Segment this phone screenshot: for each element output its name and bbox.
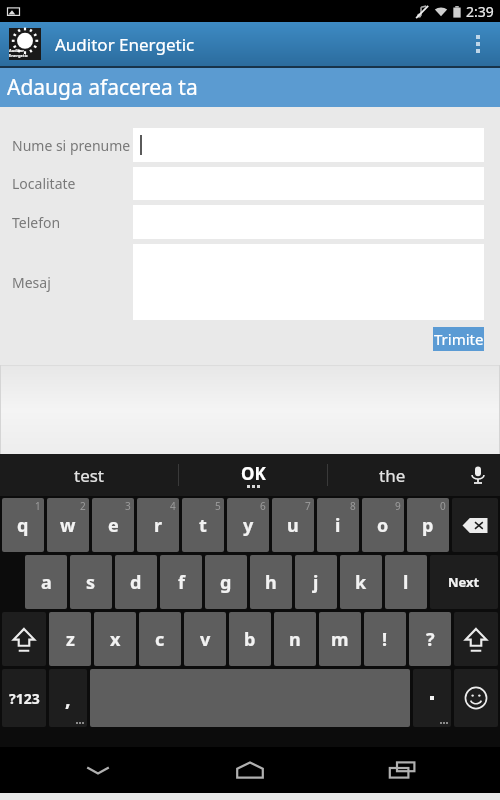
staticText: , xyxy=(65,685,71,712)
staticText: g xyxy=(220,570,232,595)
staticText: 8 xyxy=(350,499,356,513)
button[interactable]: Backspace xyxy=(452,498,498,552)
staticText: test xyxy=(74,464,105,487)
staticText: v xyxy=(200,627,211,652)
button[interactable]: c xyxy=(139,612,181,666)
button[interactable]: x xyxy=(94,612,136,666)
staticText: s xyxy=(86,570,96,595)
staticText: Trimite xyxy=(434,329,484,349)
button[interactable]: v xyxy=(184,612,226,666)
staticText: Auditor Energetic xyxy=(55,33,195,56)
button[interactable]: g xyxy=(205,555,247,609)
staticText: w xyxy=(60,513,76,538)
staticText: 2 xyxy=(80,499,86,513)
staticText: OK xyxy=(241,462,266,485)
staticText: r xyxy=(154,513,163,538)
button[interactable]: ?123 xyxy=(2,669,46,727)
staticText: Nume si prenume xyxy=(12,136,131,155)
button[interactable]: Comma xyxy=(49,669,87,727)
staticText: n xyxy=(289,627,301,652)
button[interactable]: ! xyxy=(364,612,406,666)
staticText: t xyxy=(199,513,207,538)
staticText: m xyxy=(331,627,349,652)
staticText: Mesaj xyxy=(12,273,51,292)
staticText: z xyxy=(66,627,75,652)
button[interactable]: Next xyxy=(430,555,498,609)
staticText: Telefon xyxy=(12,213,61,232)
staticText: Adauga afacerea ta xyxy=(7,73,198,102)
button[interactable]: Shift xyxy=(2,612,46,666)
staticText: 7 xyxy=(305,499,311,513)
button[interactable]: t xyxy=(182,498,224,552)
button[interactable]: u xyxy=(272,498,314,552)
button[interactable]: h xyxy=(250,555,292,609)
staticText: j xyxy=(313,570,319,595)
button[interactable]: e xyxy=(92,498,134,552)
staticText: ? xyxy=(426,627,435,652)
button[interactable] xyxy=(133,128,484,162)
button[interactable]: Period xyxy=(413,669,451,727)
button[interactable]: n xyxy=(274,612,316,666)
button[interactable]: p xyxy=(407,498,449,552)
staticText: 2:39 xyxy=(466,2,494,21)
button[interactable]: k xyxy=(340,555,382,609)
button[interactable]: test xyxy=(0,454,178,496)
staticText: k xyxy=(355,570,367,595)
button[interactable]: OK xyxy=(179,454,327,496)
button[interactable]: i xyxy=(317,498,359,552)
button[interactable]: o xyxy=(362,498,404,552)
button[interactable]: a xyxy=(25,555,67,609)
staticText: Next xyxy=(448,573,480,591)
button[interactable]: Shift xyxy=(454,612,498,666)
staticText: 9 xyxy=(395,499,401,513)
button[interactable]: q xyxy=(2,498,44,552)
button[interactable]: the xyxy=(328,454,456,496)
button[interactable]: j xyxy=(295,555,337,609)
staticText: h xyxy=(265,570,277,595)
button[interactable]: z xyxy=(49,612,91,666)
staticText: f xyxy=(178,570,185,595)
staticText: a xyxy=(41,570,52,595)
button[interactable]: Trimite xyxy=(433,327,484,351)
button[interactable]: y xyxy=(227,498,269,552)
button[interactable]: Home xyxy=(195,747,305,793)
staticText: l xyxy=(403,570,409,595)
staticText: ?123 xyxy=(9,689,40,708)
button[interactable]: s xyxy=(70,555,112,609)
staticText: c xyxy=(155,627,165,652)
button[interactable]: w xyxy=(47,498,89,552)
button[interactable]: m xyxy=(319,612,361,666)
staticText: y xyxy=(243,513,254,538)
button[interactable]: Hide keyboard xyxy=(43,747,153,793)
button[interactable]: Voice input xyxy=(456,454,500,496)
button[interactable]: Emoji xyxy=(454,669,498,727)
staticText: 1 xyxy=(35,499,41,513)
staticText: 3 xyxy=(125,499,131,513)
button[interactable]: b xyxy=(229,612,271,666)
staticText: u xyxy=(287,513,299,538)
staticText: Auditor Energetic xyxy=(9,48,41,58)
staticText: 4 xyxy=(170,499,176,513)
staticText: b xyxy=(244,627,256,652)
staticText: d xyxy=(130,570,142,595)
staticText: p xyxy=(422,513,434,538)
staticText: Localitate xyxy=(12,174,76,193)
button[interactable]: Auditor Energetic icon xyxy=(9,28,41,60)
button[interactable]: ? xyxy=(409,612,451,666)
staticText: the xyxy=(379,464,406,487)
staticText: i xyxy=(335,513,341,538)
staticText: 6 xyxy=(260,499,266,513)
staticText: ! xyxy=(382,627,388,652)
button[interactable]: Recent apps xyxy=(348,747,458,793)
button[interactable]: More options xyxy=(465,24,491,64)
staticText: e xyxy=(108,513,119,538)
button[interactable]: f xyxy=(160,555,202,609)
button[interactable]: l xyxy=(385,555,427,609)
button[interactable]: r xyxy=(137,498,179,552)
staticText: 0 xyxy=(440,499,446,513)
button[interactable]: d xyxy=(115,555,157,609)
